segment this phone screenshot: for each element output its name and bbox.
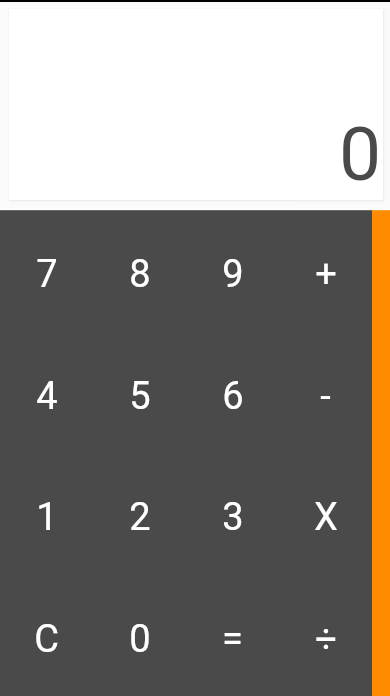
staticText: 9 [222, 252, 244, 297]
button[interactable]: Equals [186, 575, 279, 696]
button[interactable]: Three [186, 453, 279, 574]
staticText: 7 [36, 252, 58, 297]
staticText: 2 [129, 495, 151, 540]
staticText: X [314, 495, 338, 540]
staticText: 4 [36, 374, 58, 419]
button[interactable]: Nine [186, 210, 279, 331]
staticText: - [320, 374, 331, 419]
button[interactable]: Five [93, 332, 186, 453]
staticText: 6 [222, 374, 244, 419]
staticText: 3 [222, 495, 244, 540]
button[interactable]: Zero [93, 575, 186, 696]
button[interactable]: Result display [9, 9, 383, 200]
staticText: 1 [36, 495, 58, 540]
button[interactable]: Minus [279, 332, 372, 453]
button[interactable]: Seven [0, 210, 93, 331]
staticText: ÷ [315, 617, 337, 662]
button[interactable]: Six [186, 332, 279, 453]
staticText: + [315, 252, 337, 297]
staticText: 0 [129, 617, 151, 662]
button[interactable]: One [0, 453, 93, 574]
button[interactable]: Two [93, 453, 186, 574]
button[interactable]: Plus [279, 210, 372, 331]
staticText: 0 [339, 110, 382, 198]
button[interactable]: Divide [279, 575, 372, 696]
staticText: = [222, 617, 243, 662]
button[interactable]: Clear [0, 575, 93, 696]
staticText: 8 [129, 252, 151, 297]
button[interactable]: Multiply [279, 453, 372, 574]
button[interactable]: Four [0, 332, 93, 453]
staticText: 5 [129, 374, 151, 419]
staticText: C [34, 617, 59, 662]
button[interactable]: Eight [93, 210, 186, 331]
